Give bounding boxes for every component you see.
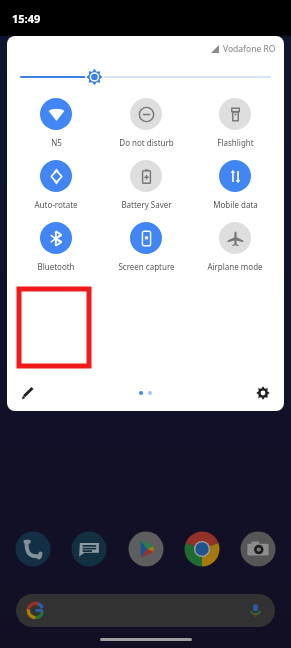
staticText: Vodafone RO (223, 43, 276, 55)
staticText: Screen capture (118, 261, 175, 272)
button[interactable]: Screen capture (106, 222, 186, 272)
button[interactable]: Settings (248, 378, 278, 408)
button[interactable]: Bluetooth (16, 222, 96, 272)
button[interactable]: Chrome (183, 530, 221, 568)
button[interactable]: Messages (70, 530, 108, 568)
staticText: Mobile data (213, 199, 258, 210)
staticText: Do not disturb (119, 137, 174, 148)
staticText: Flashlight (217, 137, 254, 148)
staticText: 15:49 (12, 11, 41, 26)
button[interactable]: Airplane mode (195, 222, 275, 272)
staticText: N5 (51, 137, 62, 148)
button[interactable]: Auto-rotate (16, 160, 96, 210)
button[interactable]: Battery Saver (106, 160, 186, 210)
button[interactable]: Camera (239, 530, 277, 568)
button[interactable]: Brightness (7, 62, 284, 92)
staticText: Bluetooth (37, 261, 75, 272)
button[interactable] (16, 594, 275, 627)
button[interactable]: N5 (16, 98, 96, 148)
button[interactable]: Do not disturb (106, 98, 186, 148)
button[interactable]: Flashlight (195, 98, 275, 148)
button[interactable]: Phone (14, 530, 52, 568)
staticText: Airplane mode (207, 261, 263, 272)
button[interactable]: Play Store (127, 530, 165, 568)
button[interactable]: Edit tiles (13, 378, 43, 408)
staticText: Auto-rotate (34, 199, 78, 210)
staticText: Battery Saver (121, 199, 172, 210)
button[interactable]: Mobile data (195, 160, 275, 210)
